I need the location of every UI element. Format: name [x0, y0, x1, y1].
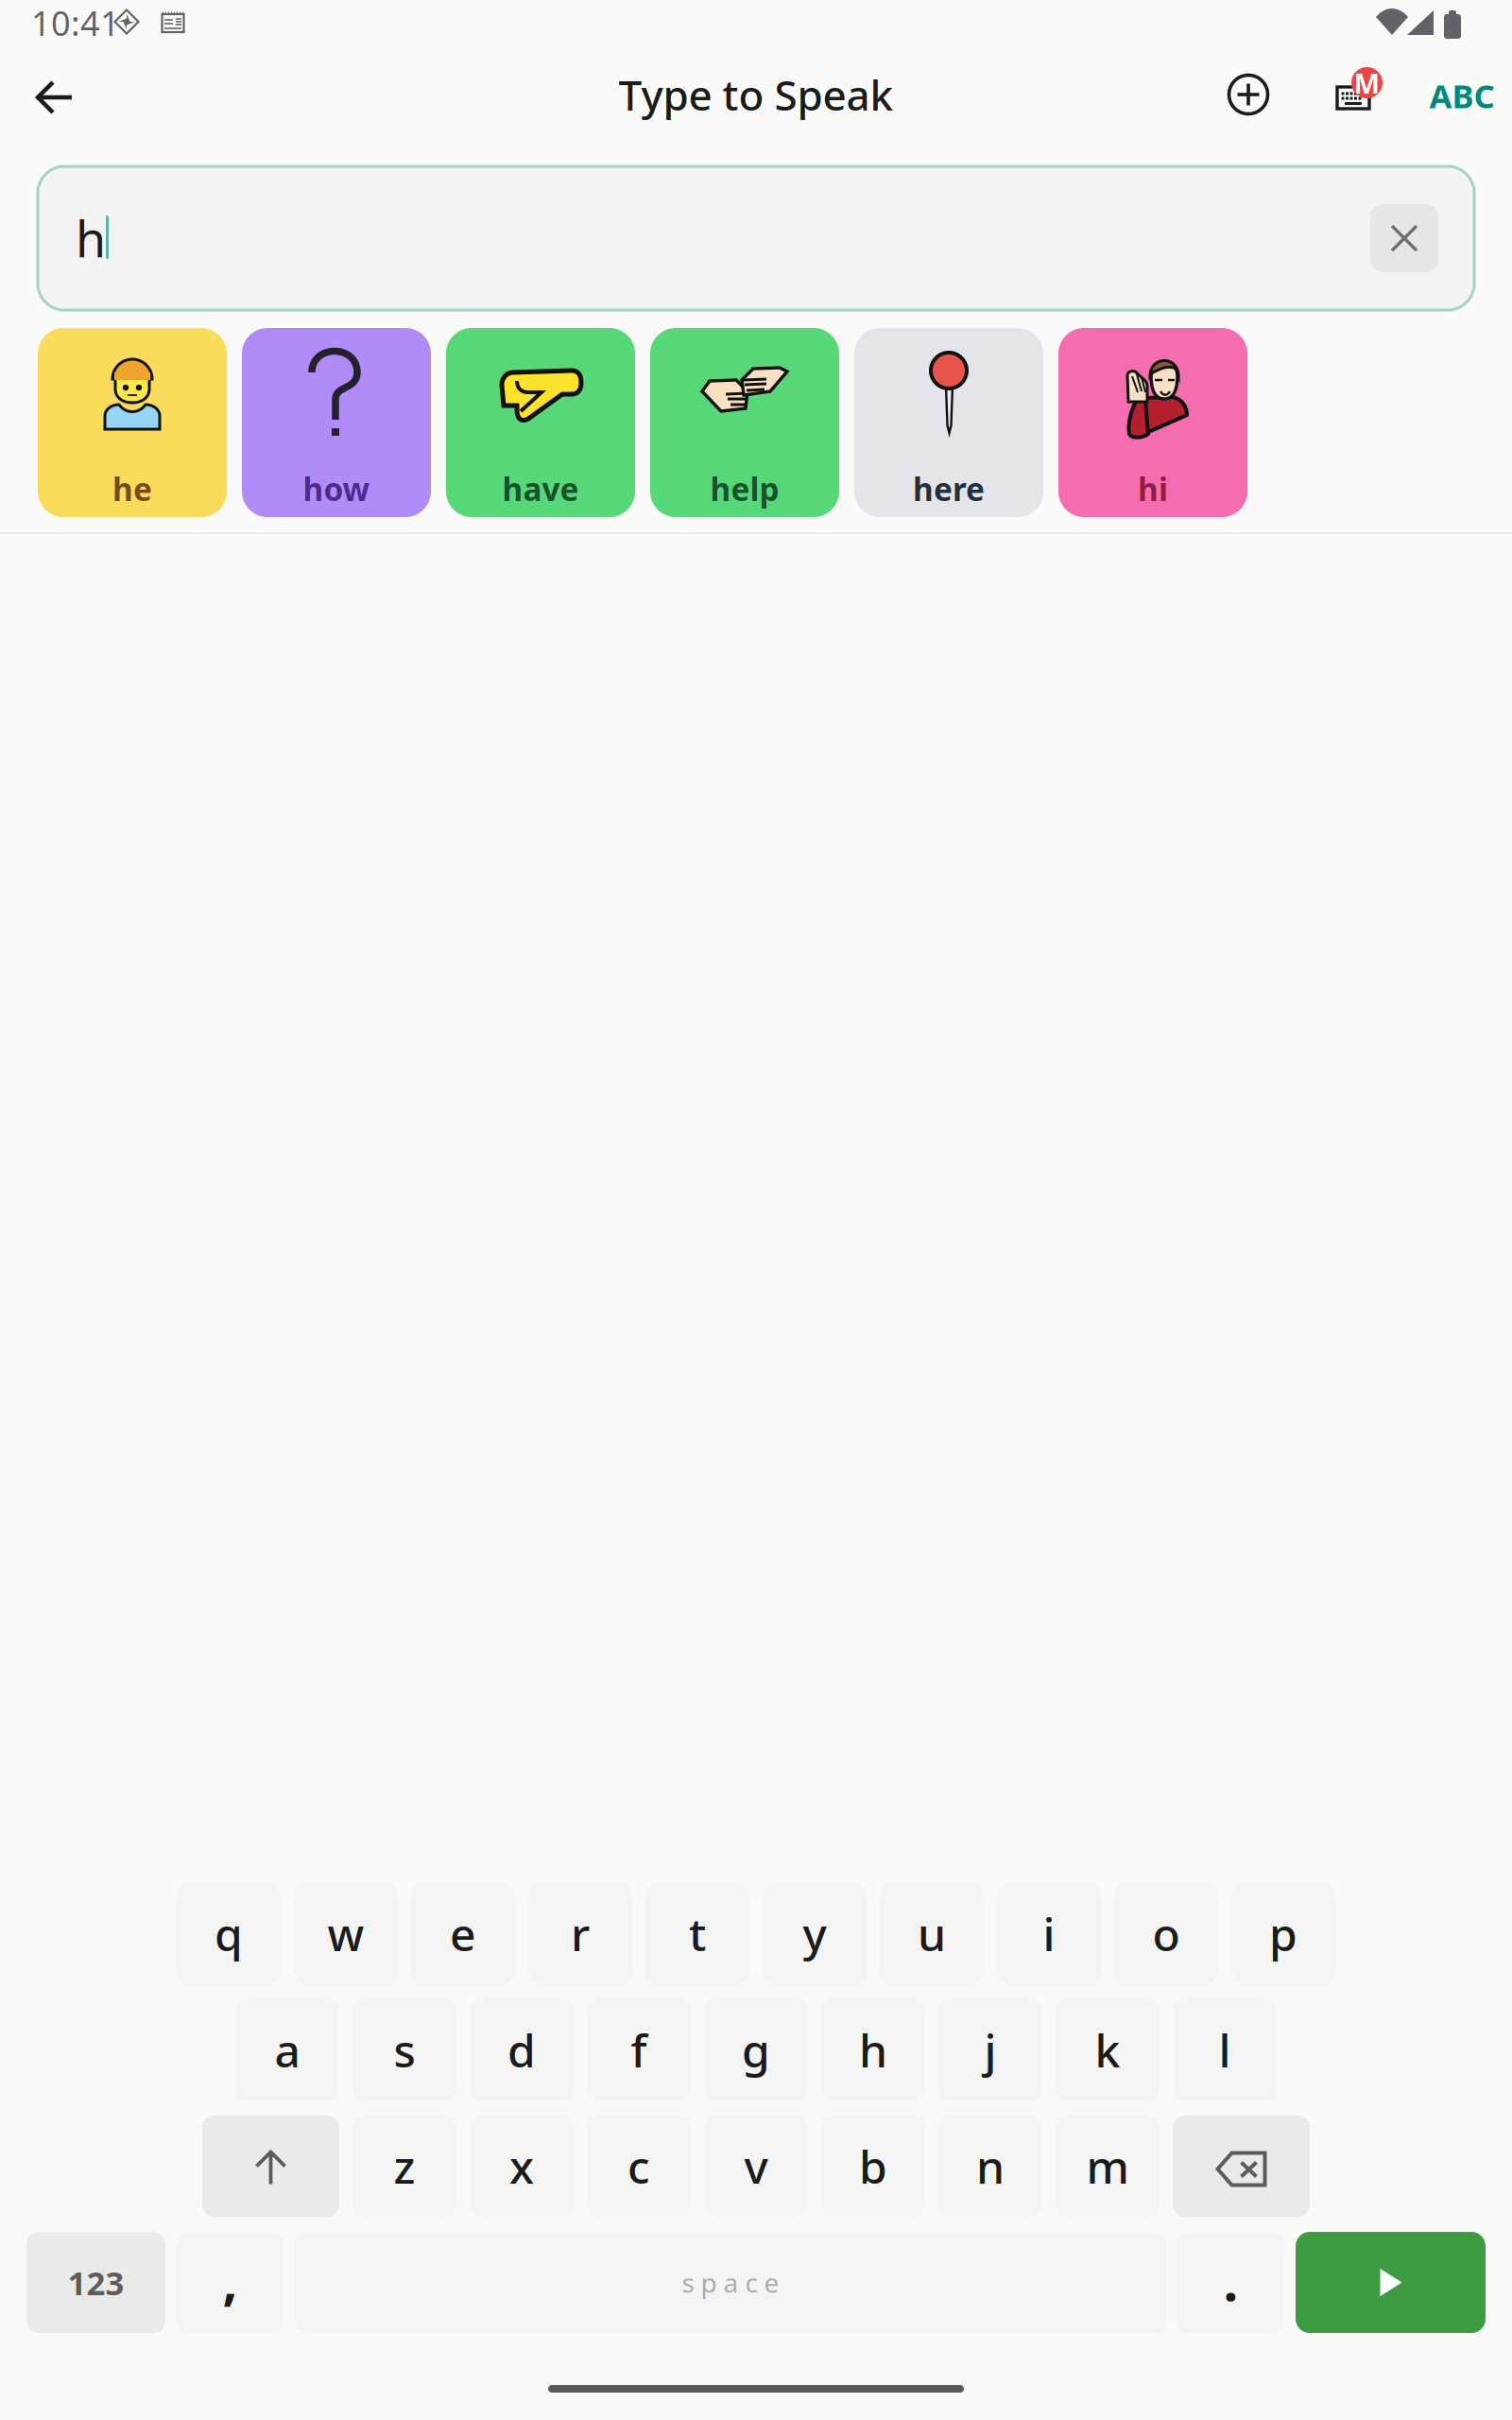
staticText: f — [631, 2020, 647, 2080]
staticText: 123 — [68, 2261, 124, 2304]
button[interactable]: g — [704, 1999, 808, 2100]
staticText: hi — [1138, 468, 1168, 510]
staticText: y — [803, 1903, 826, 1964]
button[interactable]: Backspace — [1173, 2116, 1310, 2217]
button[interactable]: k — [1056, 1999, 1160, 2100]
button[interactable]: hi — [1058, 328, 1247, 517]
button[interactable]: here — [854, 328, 1043, 517]
button[interactable]: m — [1056, 2116, 1160, 2217]
staticText: n — [976, 2136, 1005, 2196]
staticText: h — [859, 2020, 887, 2080]
staticText: , — [223, 2244, 238, 2315]
button[interactable]: c — [587, 2116, 691, 2217]
button[interactable]: Shift — [202, 2116, 339, 2217]
staticText: a — [275, 2020, 300, 2080]
button[interactable]: Period — [1177, 2232, 1284, 2333]
button[interactable]: help — [650, 328, 839, 517]
staticText: e — [450, 1903, 476, 1964]
button[interactable]: t — [645, 1883, 749, 1984]
staticText: i — [1043, 1903, 1055, 1964]
button[interactable]: i — [997, 1883, 1101, 1984]
staticText: r — [571, 1903, 590, 1964]
staticText: u — [918, 1903, 946, 1964]
staticText: M — [1354, 64, 1380, 101]
button[interactable]: Comma — [177, 2232, 283, 2333]
staticText: Type to Speak — [619, 67, 893, 122]
button[interactable]: how — [242, 328, 431, 517]
staticText: l — [1219, 2020, 1231, 2080]
button[interactable]: e — [411, 1883, 515, 1984]
staticText: have — [502, 468, 579, 510]
staticText: p — [1269, 1903, 1297, 1964]
button[interactable]: have — [446, 328, 635, 517]
staticText: ABC — [1429, 74, 1495, 117]
staticText: here — [913, 468, 985, 510]
button[interactable]: ABC — [1421, 55, 1503, 136]
button[interactable]: Speak — [1296, 2232, 1486, 2333]
button[interactable]: f — [587, 1999, 691, 2100]
button[interactable]: he — [38, 328, 227, 517]
staticText: v — [744, 2136, 768, 2196]
staticText: . — [1223, 2245, 1238, 2316]
staticText: g — [742, 2020, 770, 2080]
staticText: z — [394, 2136, 415, 2196]
button[interactable]: n — [938, 2116, 1042, 2217]
staticText: t — [689, 1903, 706, 1964]
button[interactable]: x — [470, 2116, 574, 2217]
button[interactable]: h — [821, 1999, 925, 2100]
button[interactable]: l — [1173, 1999, 1277, 2100]
button[interactable]: Keyboard mode — [1319, 54, 1400, 135]
staticText: s — [394, 2020, 415, 2080]
staticText: help — [710, 468, 779, 510]
button[interactable]: Numbers — [26, 2232, 165, 2333]
staticText: m — [1086, 2136, 1129, 2196]
staticText: s p a c e — [682, 2265, 779, 2300]
button[interactable]: s — [352, 1999, 456, 2100]
staticText: c — [627, 2136, 650, 2196]
button[interactable]: Clear text — [1370, 204, 1438, 272]
button[interactable]: u — [880, 1883, 984, 1984]
staticText: 10:41 — [31, 0, 120, 45]
button[interactable]: d — [470, 1999, 574, 2100]
button[interactable]: r — [528, 1883, 632, 1984]
button[interactable]: a — [235, 1999, 339, 2100]
button[interactable]: y — [763, 1883, 867, 1984]
staticText: b — [859, 2136, 887, 2196]
staticText: how — [303, 468, 370, 510]
staticText: d — [507, 2020, 536, 2080]
button[interactable]: Back — [14, 57, 95, 138]
staticText: k — [1095, 2020, 1120, 2080]
button[interactable]: p — [1231, 1883, 1335, 1984]
staticText: q — [215, 1903, 243, 1964]
button[interactable]: w — [294, 1883, 398, 1984]
staticText: h — [76, 206, 106, 271]
button[interactable]: o — [1114, 1883, 1218, 1984]
staticText: w — [327, 1903, 364, 1964]
button[interactable]: q — [177, 1883, 281, 1984]
button[interactable]: b — [821, 2116, 925, 2217]
button[interactable]: Space — [295, 2232, 1166, 2333]
staticText: he — [112, 468, 152, 510]
staticText: x — [509, 2136, 534, 2196]
button[interactable]: Add word — [1208, 54, 1289, 135]
button[interactable]: v — [704, 2116, 808, 2217]
button[interactable]: j — [938, 1999, 1042, 2100]
button[interactable]: z — [352, 2116, 456, 2217]
staticText: o — [1152, 1903, 1180, 1964]
staticText: j — [984, 2020, 997, 2080]
